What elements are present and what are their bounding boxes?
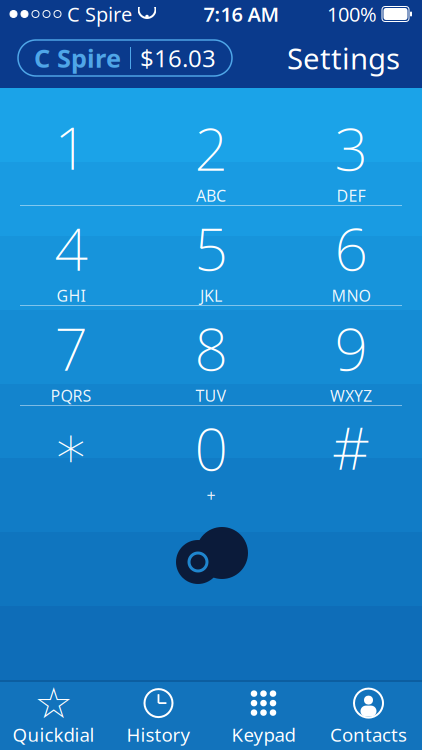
- staticText: 6: [334, 209, 367, 287]
- staticText: WXYZ: [330, 385, 372, 406]
- button[interactable]: History: [106, 682, 211, 750]
- button[interactable]: 6: [281, 206, 421, 305]
- staticText: $16.03: [140, 42, 216, 74]
- button[interactable]: ☆: [1, 682, 106, 750]
- button[interactable]: 9: [281, 306, 421, 405]
- staticText: ABC: [196, 185, 226, 206]
- staticText: +: [206, 485, 215, 506]
- button[interactable]: 2: [141, 106, 281, 205]
- staticText: ☆: [34, 679, 72, 727]
- staticText: TUV: [195, 385, 226, 406]
- staticText: 0: [194, 409, 227, 487]
- staticText: DEF: [336, 185, 365, 206]
- staticText: #: [332, 408, 370, 486]
- button[interactable]: 7: [1, 306, 141, 405]
- staticText: C Spire: [67, 1, 132, 27]
- button[interactable]: Settings: [283, 30, 404, 85]
- staticText: Settings: [287, 38, 400, 77]
- staticText: 100%: [327, 1, 377, 27]
- button[interactable]: ∗: [1, 406, 141, 505]
- button[interactable]: C Spire: [18, 40, 232, 76]
- staticText: MNO: [331, 285, 370, 306]
- staticText: PQRS: [50, 385, 91, 406]
- staticText: 7:16 AM: [203, 1, 279, 27]
- button[interactable]: 4: [1, 206, 141, 305]
- button[interactable]: 1: [1, 106, 141, 205]
- button[interactable]: 0: [141, 406, 281, 505]
- staticText: 3: [334, 109, 367, 187]
- staticText: 7: [54, 309, 87, 387]
- staticText: ∗: [52, 414, 89, 480]
- button[interactable]: Keypad: [211, 682, 316, 750]
- button[interactable]: 3: [281, 106, 421, 205]
- staticText: JKL: [200, 285, 222, 306]
- staticText: 8: [194, 309, 227, 387]
- staticText: 1: [54, 108, 87, 186]
- staticText: C Spire: [34, 41, 121, 75]
- staticText: 9: [334, 309, 367, 387]
- button[interactable]: #: [281, 406, 421, 505]
- staticText: Keypad: [231, 722, 295, 747]
- button[interactable]: 8: [141, 306, 281, 405]
- staticText: 5: [194, 209, 227, 287]
- staticText: GHI: [56, 285, 85, 306]
- staticText: Contacts: [330, 722, 407, 747]
- staticText: Quickdial: [12, 722, 94, 747]
- staticText: History: [126, 722, 190, 747]
- button[interactable]: 5: [141, 206, 281, 305]
- staticText: 2: [194, 109, 227, 187]
- button[interactable]: Contacts: [316, 682, 421, 750]
- staticText: 4: [54, 209, 87, 287]
